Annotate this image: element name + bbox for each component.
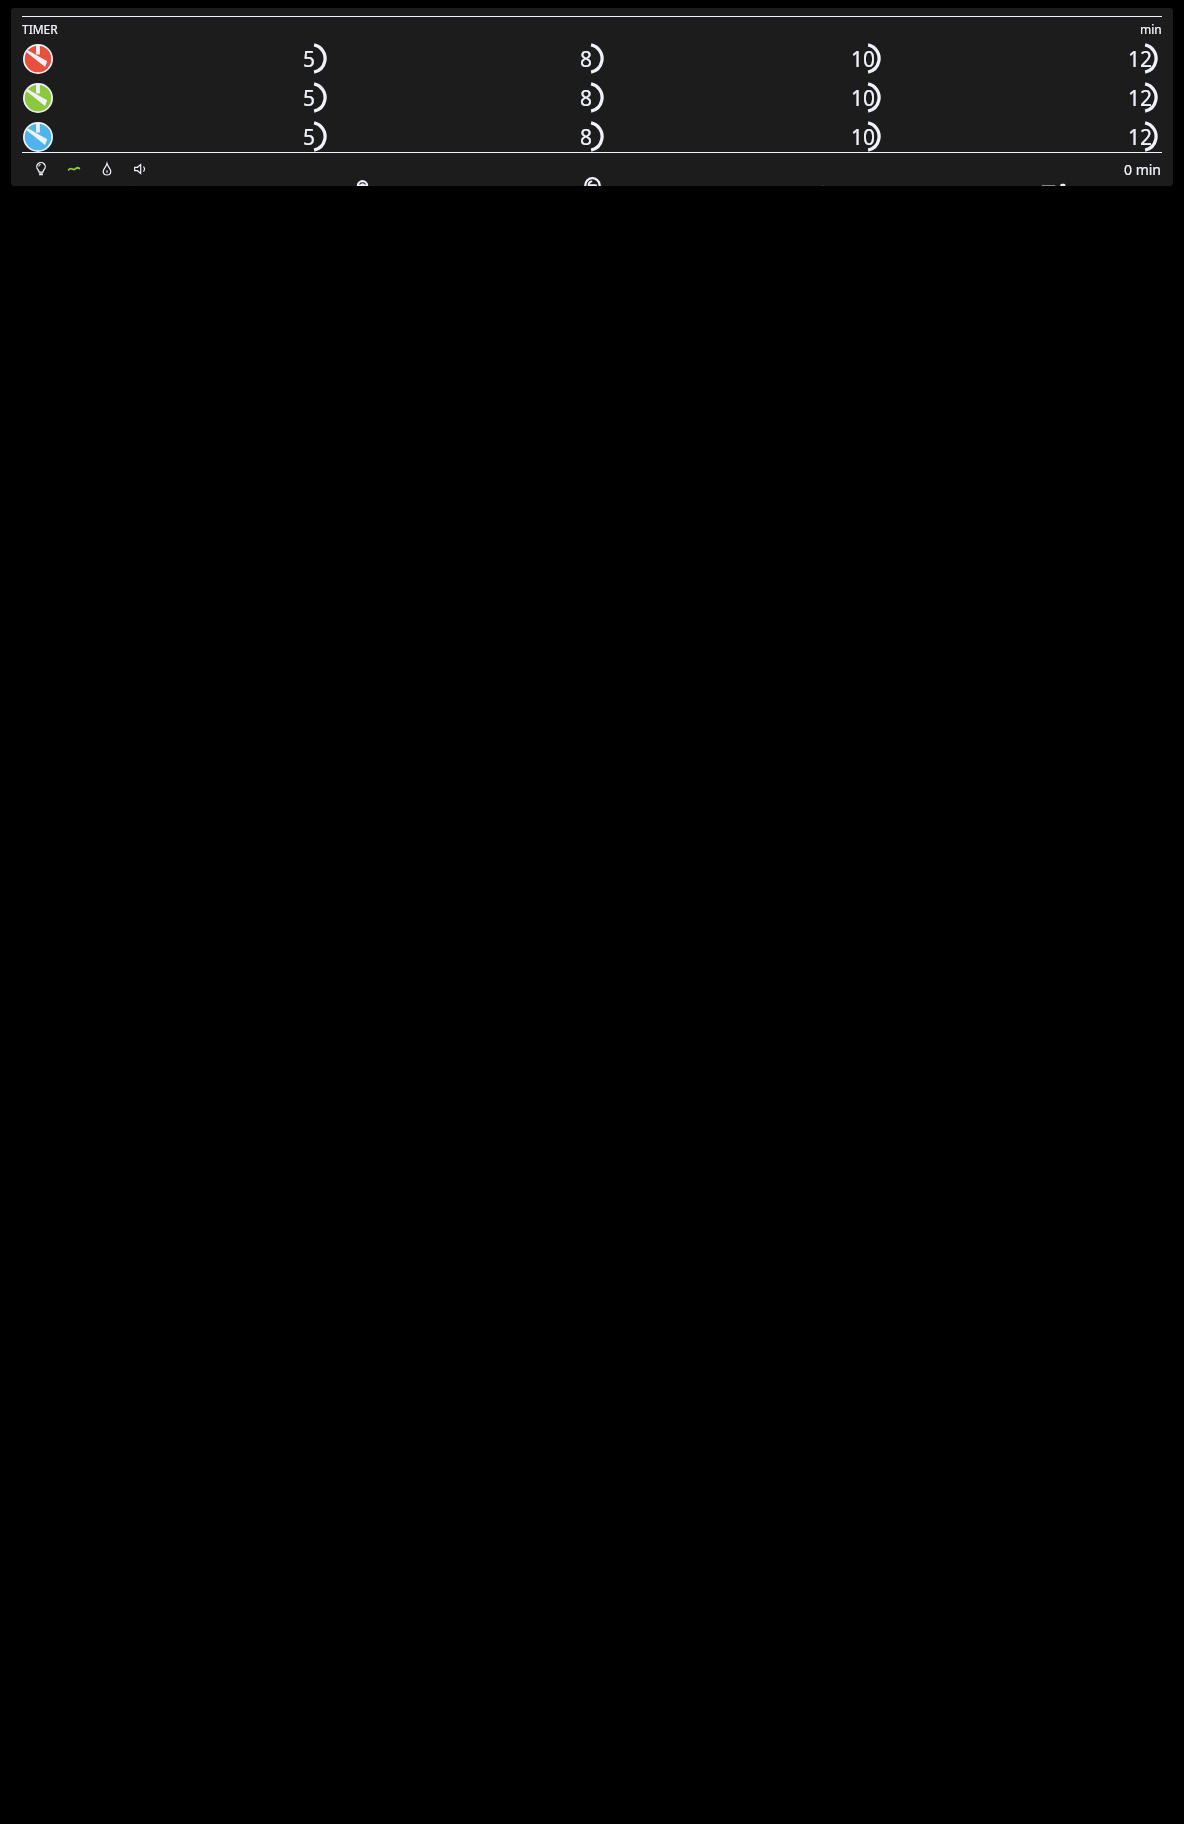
button[interactable]: 5 [298, 82, 331, 113]
staticText: min [1140, 21, 1162, 37]
staticText: 10 [851, 123, 876, 152]
staticText: 5 [303, 45, 316, 74]
button[interactable]: 8 [575, 43, 608, 74]
button[interactable]: 12 [1129, 82, 1162, 113]
staticText: 8 [580, 45, 593, 74]
button[interactable]: Light status [31, 159, 51, 179]
staticText: 8 [580, 84, 593, 113]
button[interactable]: Start timer [22, 43, 53, 74]
button[interactable]: 12 [1129, 121, 1162, 152]
button[interactable]: 12 [1129, 43, 1162, 74]
button[interactable]: Light [477, 185, 707, 186]
staticText: 5 [303, 84, 316, 113]
button[interactable]: Convection status [64, 159, 84, 179]
staticText: 10 [851, 84, 876, 113]
staticText: 0 min [1124, 160, 1162, 179]
button[interactable]: Sound [937, 185, 1167, 186]
button[interactable]: Sound status [130, 159, 150, 179]
button[interactable]: Temperature [247, 185, 477, 186]
button[interactable]: 8 [575, 121, 608, 152]
staticText: 5 [303, 123, 316, 152]
button[interactable]: Steam status [97, 159, 117, 179]
button[interactable]: 10 [852, 82, 885, 113]
button[interactable]: 10 [852, 121, 885, 152]
button[interactable]: 5 [298, 121, 331, 152]
button[interactable]: Start timer [22, 121, 53, 152]
button[interactable]: Start timer [22, 82, 53, 113]
staticText: TIMER [22, 21, 58, 37]
button[interactable]: 10 [852, 43, 885, 74]
staticText: 10 [851, 45, 876, 74]
button[interactable]: 8 [575, 82, 608, 113]
staticText: 12 [1128, 84, 1153, 113]
button[interactable]: 5 [298, 43, 331, 74]
staticText: 12 [1128, 45, 1153, 74]
staticText: 12 [1128, 123, 1153, 152]
staticText: 8 [580, 123, 593, 152]
